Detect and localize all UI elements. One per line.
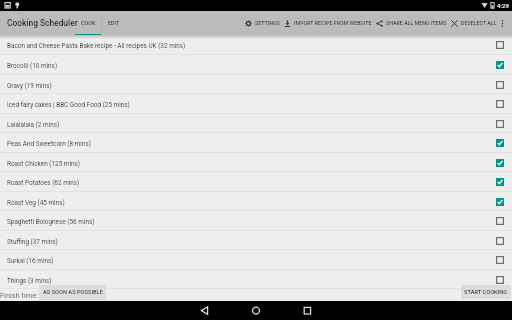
staticText: Peas And Sweetcorn (8 mins): [7, 140, 487, 148]
button[interactable]: START COOKING: [461, 285, 511, 299]
button[interactable]: Gravy (19 mins): [0, 75, 512, 94]
button[interactable]: Roast Chicken (125 mins): [0, 153, 512, 172]
staticText: SHARE ALL MENU ITEMS: [386, 20, 447, 26]
staticText: Iced fairy cakes | BBC Good Food (25 min…: [7, 101, 487, 109]
button[interactable]: SETTINGS: [244, 11, 284, 35]
staticText: Roast Potatoes (62 mins): [7, 179, 487, 187]
button[interactable]: Roast Potatoes (62 mins): [0, 172, 512, 192]
button[interactable]: AS SOON AS POSSIBLE: [39, 285, 106, 300]
staticText: COOK: [81, 20, 96, 26]
staticText: Things (3 mins): [7, 277, 487, 285]
staticText: Finish time:: [0, 291, 38, 300]
staticText: START COOKING: [464, 289, 508, 296]
button[interactable]: Roast Veg (45 mins): [0, 192, 512, 211]
button[interactable]: SHARE ALL MENU ITEMS: [376, 11, 451, 35]
button[interactable]: Brocolli (10 mins): [0, 55, 512, 75]
button[interactable]: More options: [497, 11, 512, 35]
staticText: SETTINGS: [255, 20, 280, 26]
button[interactable]: Lalalalala (2 mins): [0, 114, 512, 133]
staticText: 4:29: [497, 2, 509, 9]
button[interactable]: Stuffing (37 mins): [0, 231, 512, 250]
button[interactable]: Iced fairy cakes | BBC Good Food (25 min…: [0, 94, 512, 114]
button[interactable]: COOK: [75, 11, 101, 35]
button[interactable]: DESELECT ALL: [451, 11, 497, 35]
staticText: Cooking Scheduler: [7, 18, 78, 28]
button[interactable]: Spaghetti Bolognese (56 mins): [0, 211, 512, 231]
staticText: Spaghetti Bolognese (56 mins): [7, 218, 487, 226]
staticText: Gravy (19 mins): [7, 82, 487, 90]
button[interactable]: Peas And Sweetcorn (8 mins): [0, 133, 512, 153]
button[interactable]: IMPORT RECIPE FROM WEBSITE: [284, 11, 376, 35]
staticText: Roast Veg (45 mins): [7, 199, 487, 207]
staticText: IMPORT RECIPE FROM WEBSITE: [294, 20, 372, 26]
staticText: Brocolli (10 mins): [7, 62, 487, 70]
button[interactable]: Surkal (16 mins): [0, 250, 512, 270]
staticText: Roast Chicken (125 mins): [7, 160, 487, 168]
staticText: AS SOON AS POSSIBLE: [43, 289, 103, 296]
staticText: EDIT: [108, 20, 120, 26]
staticText: DESELECT ALL: [461, 20, 497, 26]
staticText: Surkal (16 mins): [7, 257, 487, 265]
staticText: Lalalalala (2 mins): [7, 121, 487, 129]
staticText: Stuffing (37 mins): [7, 238, 487, 246]
button[interactable]: EDIT: [102, 11, 126, 35]
button[interactable]: Bacon and Cheese Pasta Bake recipe - All…: [0, 35, 512, 55]
button[interactable]: Things (3 mins): [0, 270, 512, 289]
staticText: Bacon and Cheese Pasta Bake recipe - All…: [7, 42, 487, 50]
